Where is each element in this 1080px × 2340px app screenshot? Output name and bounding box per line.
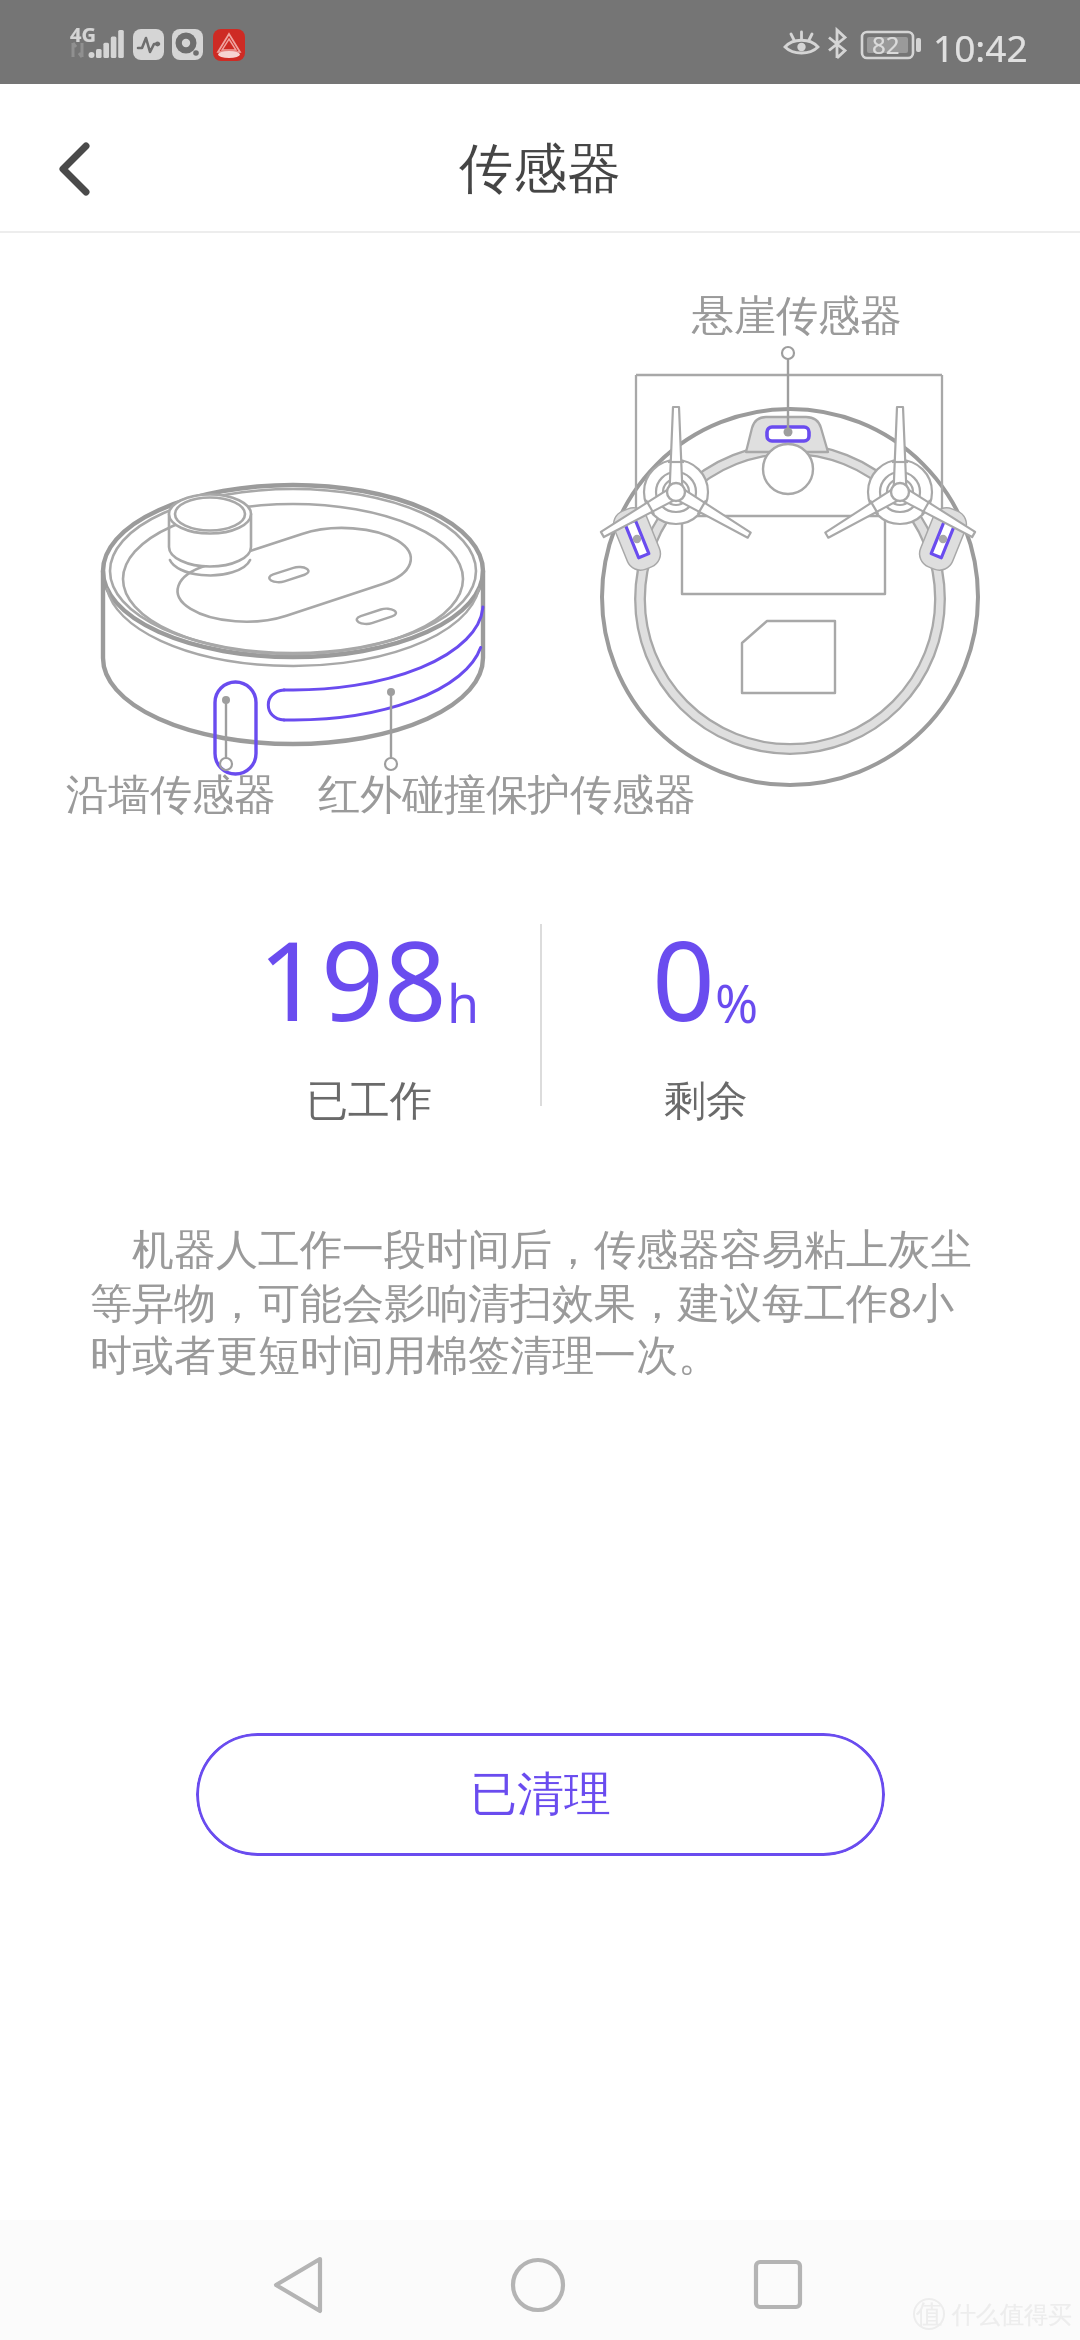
staticText: 传感器 (459, 135, 621, 203)
staticText: h (447, 967, 480, 1038)
staticText: 红外碰撞保护传感器 (318, 769, 696, 822)
staticText: 82 (872, 28, 900, 61)
button[interactable]: 已清理 (196, 1733, 885, 1856)
button[interactable]: Back (233, 2225, 363, 2340)
staticText: 0 (652, 903, 715, 1053)
staticText: 剩余 (664, 1075, 748, 1128)
button[interactable]: Home (473, 2225, 603, 2340)
staticText: 198 (258, 903, 447, 1053)
staticText: 10:42 (933, 22, 1028, 72)
staticText: % (715, 967, 759, 1038)
staticText: 沿墙传感器 (66, 769, 276, 822)
staticText: 机器人工作一段时间后，传感器容易粘上灰尘等异物，可能会影响清扫效果，建议每工作8… (90, 1219, 984, 1382)
staticText: 已工作 (306, 1075, 432, 1128)
staticText: 已清理 (470, 1765, 611, 1824)
button[interactable]: Back (22, 116, 128, 222)
staticText: 什么值得买 (952, 2300, 1072, 2330)
button[interactable]: Recent apps (713, 2225, 843, 2340)
staticText: 悬崖传感器 (692, 290, 902, 343)
staticText: 4G (70, 21, 96, 48)
staticText: 值 (916, 2298, 942, 2330)
